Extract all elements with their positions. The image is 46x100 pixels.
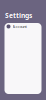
staticText: Settings <box>5 11 32 20</box>
staticText: Account <box>12 24 26 29</box>
